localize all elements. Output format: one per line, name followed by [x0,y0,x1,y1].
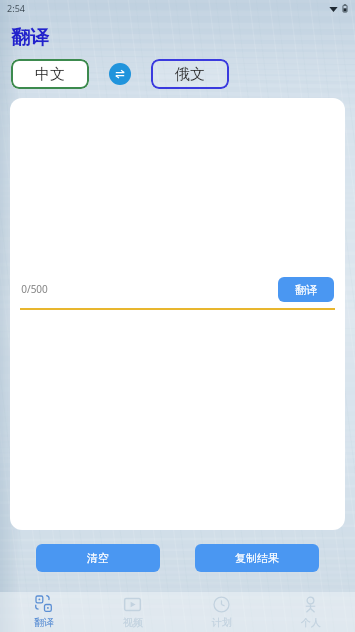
staticText: 翻译 [34,616,54,629]
staticText: 俄文 [175,65,205,84]
button[interactable]: 俄文 [151,59,229,89]
staticText: 清空 [87,551,109,565]
button[interactable]: 翻译 [0,592,88,632]
button[interactable]: 计划 [177,592,266,632]
staticText: 计划 [212,616,232,629]
button[interactable]: 中文 [11,59,89,89]
staticText: 个人 [301,616,321,629]
staticText: 0/500 [21,282,48,296]
staticText: 中文 [35,65,65,84]
staticText: 翻译 [11,26,49,50]
staticText: 翻译 [295,283,317,297]
staticText: 视频 [123,616,143,629]
button[interactable]: 个人 [266,592,355,632]
button[interactable]: 清空 [36,544,160,572]
staticText: 2:54 [7,2,25,14]
staticText: 复制结果 [235,551,279,565]
button[interactable]: 复制结果 [195,544,319,572]
button[interactable]: Swap languages [109,63,131,85]
button[interactable]: 翻译 [278,277,334,302]
button[interactable]: 视频 [88,592,177,632]
